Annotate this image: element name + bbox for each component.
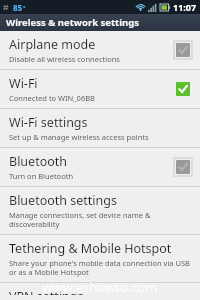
button[interactable]: Disabled [174,41,192,59]
button[interactable]: Bluetooth settings [0,187,200,234]
staticText: Tethering & Mobile Hotspot [9,240,172,257]
button[interactable]: Wi-Fi [0,70,200,108]
staticText: Set up & manage wireless access points [9,132,149,142]
staticText: 85 [13,2,23,13]
button[interactable]: Bluetooth [0,148,200,186]
staticText: www.eshowto.com [0,278,200,296]
staticText: Wi-Fi [9,75,38,92]
staticText: Turn on Bluetooth [9,171,74,181]
button[interactable]: Tethering & Mobile Hotspot [0,235,200,282]
button[interactable]: VPN settings [0,283,200,300]
staticText: Wi-Fi settings [9,114,88,131]
button[interactable]: Wi-Fi settings [0,109,200,147]
staticText: Disable all wireless connections [9,54,120,64]
button[interactable]: Disabled [174,158,192,176]
staticText: Share your phone's mobile data connectio… [9,258,192,277]
staticText: Manage connections, set device name & di… [9,210,192,229]
staticText: Wireless & network settings [6,16,139,29]
staticText: Bluetooth [9,153,68,170]
staticText: ° [23,4,26,12]
staticText: VPN settings [9,288,84,295]
staticText: Airplane mode [9,36,96,53]
staticText: Bluetooth settings [9,192,117,209]
button[interactable]: Enabled [174,80,192,98]
staticText: 11:07 [173,1,197,13]
staticText: Connected to WIN_06BB [9,93,95,103]
button[interactable]: Airplane mode [0,31,200,69]
